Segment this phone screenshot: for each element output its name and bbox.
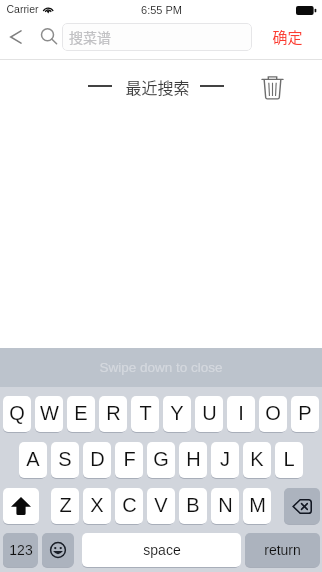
button[interactable]: Clear search history xyxy=(253,70,291,107)
staticText: Q xyxy=(9,402,25,424)
staticText: N xyxy=(218,494,233,516)
button[interactable]: K xyxy=(243,442,271,478)
button[interactable]: W xyxy=(35,396,63,432)
staticText: S xyxy=(58,448,72,470)
staticText: U xyxy=(202,402,217,424)
staticText: P xyxy=(298,402,312,424)
button[interactable]: 123 xyxy=(3,533,38,567)
button[interactable]: E xyxy=(67,396,95,432)
button[interactable]: Y xyxy=(163,396,191,432)
staticText: M xyxy=(249,494,266,516)
button[interactable]: O xyxy=(259,396,287,432)
button[interactable]: J xyxy=(211,442,239,478)
staticText: return xyxy=(264,542,301,558)
button[interactable]: I xyxy=(227,396,255,432)
staticText: J xyxy=(220,448,230,470)
staticText: 最近搜索 xyxy=(125,75,190,98)
button[interactable]: space xyxy=(82,533,241,567)
staticText: Carrier xyxy=(6,3,39,15)
staticText: B xyxy=(186,494,200,516)
button[interactable]: T xyxy=(131,396,159,432)
button[interactable]: H xyxy=(179,442,207,478)
button[interactable]: Shift xyxy=(3,488,39,524)
button[interactable]: Q xyxy=(3,396,31,432)
staticText: D xyxy=(90,448,105,470)
staticText: O xyxy=(265,402,281,424)
button[interactable]: S xyxy=(51,442,79,478)
staticText: E xyxy=(74,402,88,424)
button[interactable]: V xyxy=(147,488,175,524)
button[interactable]: Back xyxy=(2,22,30,52)
button[interactable]: R xyxy=(99,396,127,432)
button[interactable]: G xyxy=(147,442,175,478)
staticText: I xyxy=(238,402,244,424)
staticText: V xyxy=(154,494,168,516)
button[interactable]: 搜菜谱 xyxy=(62,23,252,51)
staticText: L xyxy=(283,448,295,470)
button[interactable]: N xyxy=(211,488,239,524)
button[interactable]: Delete xyxy=(284,488,320,524)
staticText: Swipe down to close xyxy=(99,360,223,375)
button[interactable]: F xyxy=(115,442,143,478)
staticText: Z xyxy=(59,494,72,516)
staticText: G xyxy=(153,448,169,470)
staticText: Y xyxy=(170,402,184,424)
staticText: W xyxy=(40,402,59,424)
staticText: A xyxy=(26,448,40,470)
button[interactable]: M xyxy=(243,488,271,524)
staticText: R xyxy=(106,402,121,424)
staticText: T xyxy=(139,402,152,424)
button[interactable]: B xyxy=(179,488,207,524)
staticText: 123 xyxy=(9,542,33,558)
staticText: space xyxy=(143,542,181,558)
button[interactable]: X xyxy=(83,488,111,524)
staticText: H xyxy=(186,448,201,470)
button[interactable]: A xyxy=(19,442,47,478)
button[interactable]: C xyxy=(115,488,143,524)
button[interactable]: L xyxy=(275,442,303,478)
button[interactable]: Emoji keyboard xyxy=(42,533,74,567)
button[interactable]: 确定 xyxy=(264,22,310,52)
button[interactable]: Z xyxy=(51,488,79,524)
button[interactable]: P xyxy=(291,396,319,432)
button[interactable]: Swipe down to close xyxy=(0,348,322,387)
button[interactable]: Search xyxy=(35,22,63,52)
staticText: K xyxy=(250,448,264,470)
staticText: 搜菜谱 xyxy=(69,27,111,47)
button[interactable]: U xyxy=(195,396,223,432)
staticText: 确定 xyxy=(272,26,303,48)
staticText: C xyxy=(122,494,137,516)
button[interactable]: return xyxy=(245,533,320,567)
button[interactable]: D xyxy=(83,442,111,478)
staticText: 6:55 PM xyxy=(141,4,182,16)
staticText: X xyxy=(90,494,104,516)
staticText: F xyxy=(123,448,136,470)
